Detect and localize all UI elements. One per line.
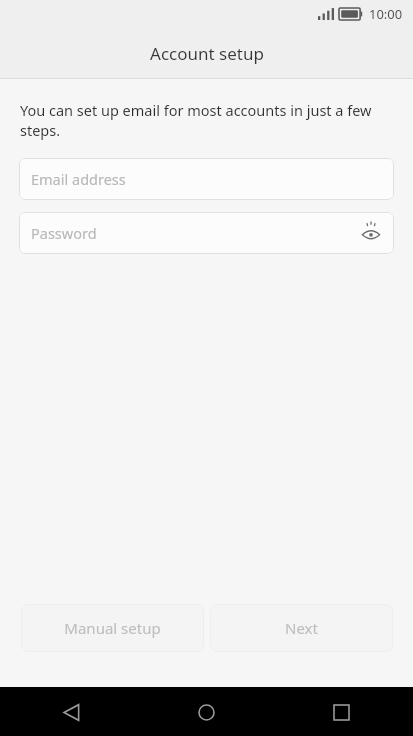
button[interactable]: Next <box>210 604 393 652</box>
staticText: You can set up email for most accounts i… <box>20 100 397 141</box>
button[interactable]: Manual setup <box>21 604 204 652</box>
staticText: Account setup <box>150 42 264 65</box>
staticText: Next <box>285 618 318 638</box>
button[interactable]: Home <box>183 689 229 735</box>
button[interactable]: Recent apps <box>318 689 364 735</box>
staticText: 10:00 <box>369 5 403 23</box>
staticText: Email address <box>31 169 126 189</box>
button[interactable]: Back <box>48 689 94 735</box>
button[interactable]: Password <box>19 212 394 254</box>
button[interactable]: Email address <box>19 158 394 200</box>
staticText: Password <box>31 223 97 243</box>
button[interactable]: Show password <box>356 218 386 248</box>
staticText: Manual setup <box>64 618 161 638</box>
